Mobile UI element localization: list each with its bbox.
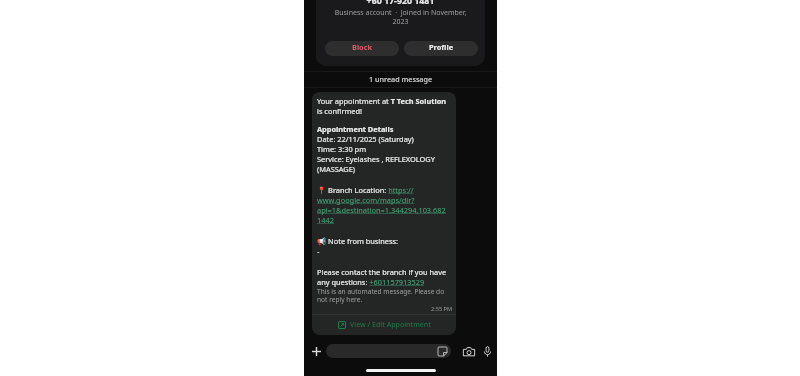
- staticText: This is an automated message. Please do …: [317, 287, 451, 304]
- staticText: -: [317, 246, 320, 256]
- button[interactable]: View / Edit Appointment: [312, 315, 456, 335]
- button[interactable]: Voice message: [481, 345, 494, 358]
- staticText: 📢 Note from business:: [317, 236, 399, 246]
- button[interactable]: Camera: [462, 345, 475, 358]
- staticText: 2:55 PM: [431, 305, 453, 313]
- staticText: View / Edit Appointment: [350, 320, 431, 330]
- button[interactable]: Block: [325, 41, 399, 56]
- staticText: Service: Eyelashes , REFLEXOLOGY (MASSAG…: [317, 154, 451, 174]
- staticText: Profile: [429, 42, 454, 52]
- staticText: Block: [352, 42, 373, 52]
- staticText: +60 17-920 1481: [322, 0, 479, 7]
- staticText: Date: 22/11/2025 (Saturday): [317, 134, 414, 144]
- button[interactable]: Attach: [309, 344, 324, 359]
- staticText: Please contact the branch if you have an…: [317, 267, 451, 287]
- button[interactable]: Your appointment at T Tech Solution is c…: [312, 92, 456, 335]
- button[interactable]: Stickers: [326, 344, 451, 358]
- staticText: 📍 Branch Location: https:// www.google.c…: [317, 185, 446, 225]
- staticText: 1 unread message: [369, 74, 433, 84]
- staticText: Your appointment at T Tech Solution is c…: [317, 96, 451, 116]
- button[interactable]: Profile: [404, 41, 478, 56]
- staticText: Appointment Details: [317, 124, 394, 134]
- staticText: Business account · Joined in November, 2…: [322, 8, 479, 26]
- staticText: Time: 3:30 pm: [317, 144, 367, 154]
- other: Stickers: [438, 347, 447, 356]
